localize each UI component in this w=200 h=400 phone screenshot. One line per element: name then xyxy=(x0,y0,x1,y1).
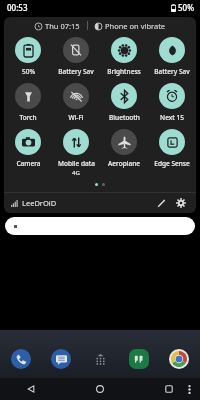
button[interactable]: Next 15 xyxy=(148,83,196,122)
staticText: 50% xyxy=(22,67,35,76)
button[interactable]: Edge Sense xyxy=(148,129,196,168)
staticText: Wi-Fi xyxy=(68,113,84,122)
button[interactable]: Camera xyxy=(4,129,52,168)
staticText: Mobile data xyxy=(58,159,95,168)
staticText: Bluetooth xyxy=(109,113,140,122)
button[interactable]: Recents xyxy=(160,380,178,398)
button[interactable]: Settings xyxy=(173,195,189,211)
staticText: Brightness xyxy=(107,67,141,76)
button[interactable]: Phone xyxy=(10,348,32,370)
staticText: Next 15 xyxy=(160,113,184,122)
button[interactable]: Brightness xyxy=(100,37,148,76)
staticText: Aeroplane xyxy=(108,159,140,168)
staticText: Edge Sense xyxy=(154,159,190,168)
button[interactable]: Chrome xyxy=(168,348,190,370)
staticText: Camera xyxy=(16,159,41,168)
button[interactable]: Messages xyxy=(50,348,72,370)
button[interactable]: More options xyxy=(182,382,196,396)
button[interactable]: Search xyxy=(5,217,195,235)
button[interactable]: 50% xyxy=(4,37,52,76)
button[interactable]: Thu 07:15 xyxy=(33,21,82,31)
staticText: Torch xyxy=(19,113,37,122)
button[interactable]: Home xyxy=(91,380,109,398)
staticText: 4G xyxy=(72,169,80,177)
staticText: Battery Sav xyxy=(154,67,190,76)
button[interactable]: Hangouts xyxy=(128,348,150,370)
button[interactable]: Wi-Fi xyxy=(52,83,100,122)
staticText: Thu 07:15 xyxy=(45,21,80,31)
button[interactable]: Bluetooth xyxy=(100,83,148,122)
staticText: Phone on vibrate xyxy=(105,21,166,31)
button[interactable]: Battery Sav xyxy=(52,37,100,76)
button[interactable]: Torch xyxy=(4,83,52,122)
button[interactable]: Battery Sav xyxy=(148,37,196,76)
staticText: LeeDrOiD xyxy=(22,198,57,208)
button[interactable]: Back xyxy=(22,380,40,398)
staticText: 00:53 xyxy=(7,2,28,13)
button[interactable]: All apps xyxy=(90,349,110,369)
staticText: 50% xyxy=(178,2,194,13)
button[interactable]: Aeroplane xyxy=(100,129,148,168)
staticText: Battery Sav xyxy=(58,67,94,76)
button[interactable]: Mobile data xyxy=(52,129,100,177)
button[interactable]: Edit tiles xyxy=(153,195,169,211)
button[interactable]: Phone on vibrate xyxy=(93,21,168,31)
